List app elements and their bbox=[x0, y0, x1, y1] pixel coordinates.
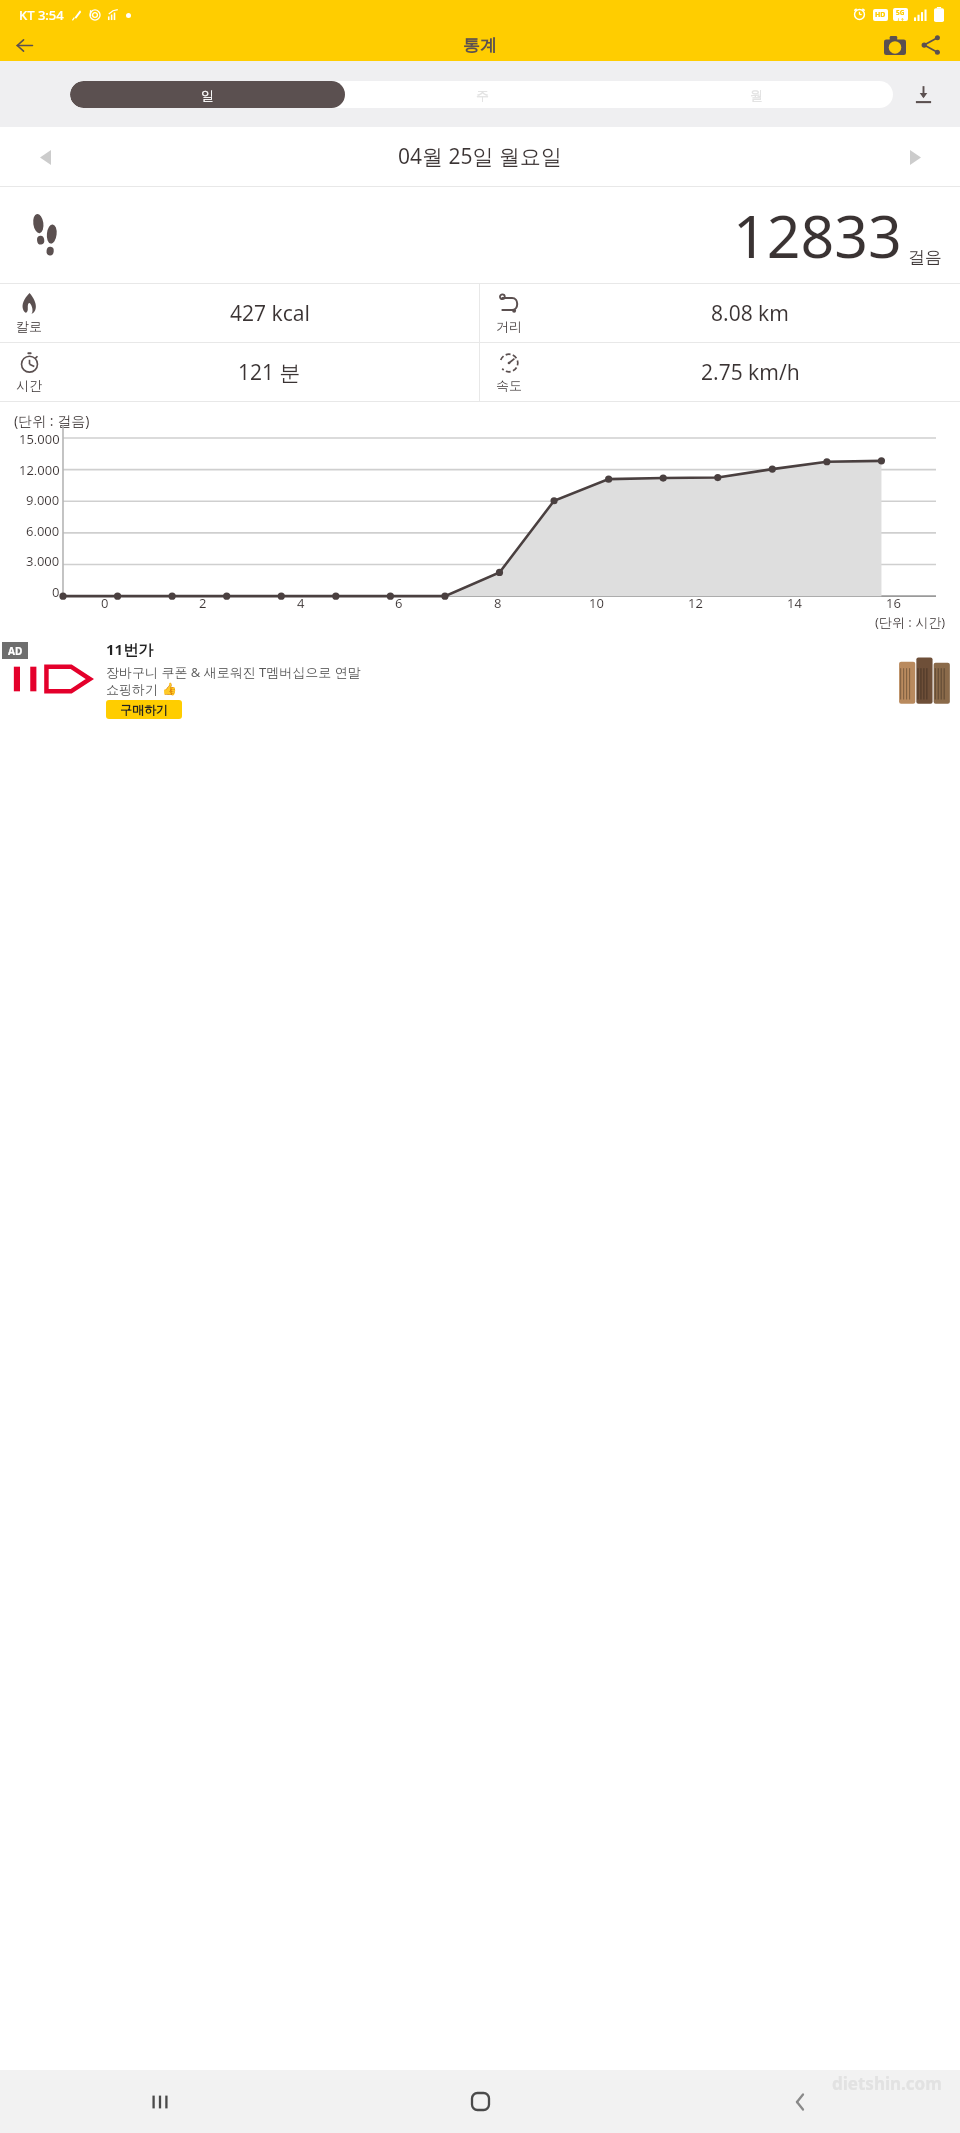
staticText: 2.75 km/h bbox=[701, 358, 800, 387]
staticText: 427 kcal bbox=[230, 299, 310, 328]
staticText: 4 bbox=[297, 594, 305, 612]
staticText: 10 bbox=[589, 594, 604, 612]
button[interactable]: 일 bbox=[70, 81, 345, 108]
staticText: HD bbox=[875, 10, 886, 20]
staticText: 월 bbox=[750, 87, 763, 103]
staticText: 일 bbox=[201, 87, 214, 103]
staticText: AD bbox=[8, 644, 23, 658]
staticText: (단위 : 시간) bbox=[875, 613, 946, 631]
button[interactable]: 거리 bbox=[480, 284, 960, 342]
button[interactable]: 칼로 bbox=[0, 284, 479, 342]
button[interactable]: 시간 bbox=[0, 343, 479, 401]
staticText: ↓↑ bbox=[896, 17, 905, 21]
staticText: KT 3:54 bbox=[19, 6, 64, 24]
staticText: 속도 bbox=[496, 377, 522, 393]
staticText: 9,000 bbox=[26, 491, 60, 505]
staticText: 걸음 bbox=[908, 247, 942, 268]
staticText: 통계 bbox=[463, 35, 497, 56]
staticText: 14 bbox=[787, 594, 802, 612]
staticText: 시간 bbox=[16, 377, 42, 393]
button[interactable]: 속도 bbox=[480, 343, 960, 401]
staticText: 5G bbox=[896, 8, 905, 17]
button[interactable]: Download bbox=[908, 79, 938, 109]
staticText: 12,000 bbox=[19, 461, 60, 475]
staticText: 6,000 bbox=[26, 522, 60, 536]
staticText: dietshin.com bbox=[832, 2072, 942, 2095]
staticText: 12 bbox=[688, 594, 703, 612]
button[interactable]: Back bbox=[8, 29, 40, 61]
button[interactable]: Previous day bbox=[28, 140, 62, 174]
staticText: 8.08 km bbox=[711, 299, 789, 328]
button[interactable]: Back bbox=[640, 2070, 960, 2133]
staticText: 6 bbox=[395, 594, 403, 612]
staticText: 0 bbox=[101, 594, 109, 612]
button[interactable]: 12833 bbox=[0, 187, 960, 283]
staticText: 주 bbox=[476, 87, 489, 103]
button[interactable]: Share bbox=[914, 29, 948, 61]
staticText: (단위 : 걸음) bbox=[14, 411, 90, 430]
staticText: 👍 bbox=[162, 682, 177, 696]
staticText: 0 bbox=[52, 583, 60, 597]
button[interactable]: Next day bbox=[898, 140, 932, 174]
staticText: 8 bbox=[494, 594, 502, 612]
staticText: 12833 bbox=[733, 195, 902, 275]
staticText: 15,000 bbox=[19, 430, 60, 444]
button[interactable]: 구매하기 bbox=[106, 700, 182, 719]
staticText: 16 bbox=[886, 594, 901, 612]
staticText: 쇼핑하기 bbox=[106, 681, 158, 697]
staticText: 장바구니 쿠폰 & 새로워진 T멤버십으로 연말 bbox=[106, 663, 361, 681]
staticText: 3,000 bbox=[26, 552, 60, 566]
button[interactable]: Recents bbox=[0, 2070, 320, 2133]
staticText: 04월 25일 월요일 bbox=[398, 142, 562, 171]
staticText: 구매하기 bbox=[120, 702, 168, 717]
button[interactable]: Home bbox=[320, 2070, 640, 2133]
button[interactable]: Camera bbox=[878, 29, 912, 61]
staticText: 2 bbox=[199, 594, 207, 612]
button[interactable]: AD bbox=[0, 639, 960, 719]
staticText: 121 분 bbox=[238, 358, 301, 387]
staticText: 11번가 bbox=[106, 639, 154, 659]
staticText: 칼로 bbox=[16, 318, 42, 334]
staticText: 거리 bbox=[496, 318, 522, 334]
